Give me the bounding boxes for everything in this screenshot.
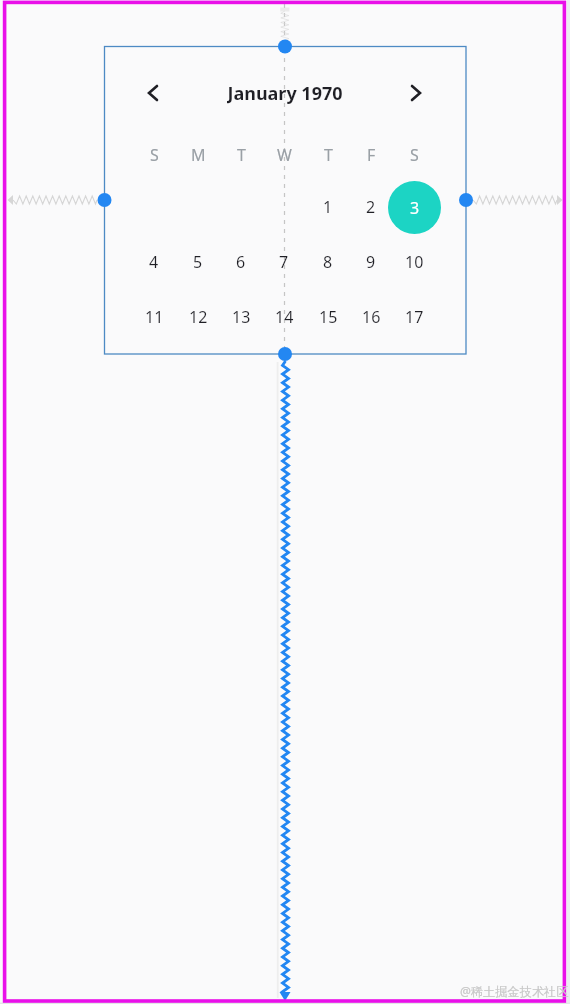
button[interactable]: January 17, 1970: [392, 295, 436, 339]
button[interactable]: January 9, 1970: [349, 240, 393, 284]
button[interactable]: January 13, 1970: [219, 295, 263, 339]
staticText: January 1970: [227, 81, 343, 105]
staticText: 7: [279, 251, 289, 273]
staticText: 15: [319, 306, 338, 328]
staticText: S: [150, 144, 159, 166]
button[interactable]: January 4, 1970: [132, 240, 176, 284]
button[interactable]: January 7, 1970: [262, 240, 306, 284]
button[interactable]: January 8, 1970: [306, 240, 350, 284]
staticText: 12: [189, 306, 208, 328]
staticText: 16: [362, 306, 381, 328]
button[interactable]: January 1, 1970: [306, 185, 350, 229]
staticText: 1: [323, 196, 333, 218]
button[interactable]: January 14, 1970: [262, 295, 306, 339]
button[interactable]: January 5, 1970: [176, 240, 220, 284]
staticText: F: [367, 144, 376, 166]
staticText: 10: [405, 251, 424, 273]
staticText: 8: [323, 251, 333, 273]
button[interactable]: January 15, 1970: [306, 295, 350, 339]
button[interactable]: Previous month: [141, 81, 165, 105]
staticText: 3: [410, 197, 420, 219]
button[interactable]: January 11, 1970: [132, 295, 176, 339]
button[interactable]: January 3, 1970: [388, 181, 441, 234]
button[interactable]: January 16, 1970: [349, 295, 393, 339]
staticText: 4: [149, 251, 159, 273]
staticText: S: [410, 144, 419, 166]
button[interactable]: Next month: [404, 81, 428, 105]
staticText: @稀土掘金技术社区: [460, 983, 569, 1000]
staticText: 6: [236, 251, 246, 273]
staticText: M: [191, 144, 206, 166]
button[interactable]: January 12, 1970: [176, 295, 220, 339]
staticText: 17: [405, 306, 424, 328]
staticText: 9: [366, 251, 376, 273]
button[interactable]: January 6, 1970: [219, 240, 263, 284]
staticText: 11: [145, 306, 164, 328]
staticText: 14: [275, 306, 294, 328]
staticText: 13: [232, 306, 251, 328]
staticText: 2: [366, 196, 376, 218]
button[interactable]: January 10, 1970: [392, 240, 436, 284]
staticText: W: [277, 144, 292, 166]
button[interactable]: January 2, 1970: [349, 185, 393, 229]
staticText: T: [324, 144, 333, 166]
staticText: 5: [193, 251, 203, 273]
staticText: T: [237, 144, 246, 166]
